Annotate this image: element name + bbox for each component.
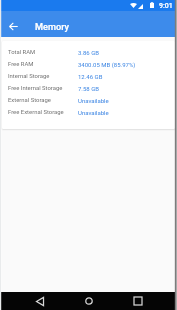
staticText: External Storage bbox=[8, 97, 51, 104]
staticText: Unavailable bbox=[78, 109, 109, 116]
button[interactable]: Recent apps bbox=[120, 292, 156, 310]
staticText: Free External Storage bbox=[8, 109, 64, 116]
button[interactable]: Home bbox=[71, 292, 107, 310]
staticText: Total RAM bbox=[8, 49, 36, 56]
staticText: Memory bbox=[35, 21, 69, 32]
staticText: 7.58 GB bbox=[78, 85, 100, 92]
staticText: 12.46 GB bbox=[78, 73, 103, 80]
staticText: 3400.05 MB (85.97%) bbox=[78, 61, 136, 68]
staticText: Unavailable bbox=[78, 97, 109, 104]
button[interactable]: Navigate up bbox=[4, 17, 23, 36]
staticText: Internal Storage bbox=[8, 73, 50, 80]
staticText: 3.86 GB bbox=[78, 49, 100, 56]
staticText: 9:01 bbox=[159, 2, 173, 10]
button[interactable]: Back bbox=[22, 292, 58, 310]
staticText: Free Internal Storage bbox=[8, 85, 63, 92]
staticText: Free RAM bbox=[8, 61, 34, 68]
